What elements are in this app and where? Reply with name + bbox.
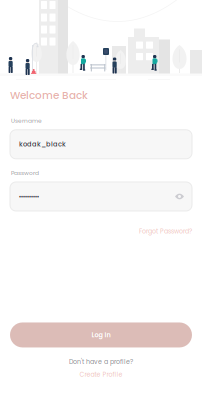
button[interactable]: Forgot Password?: [139, 227, 192, 236]
staticText: ••••••••••: [19, 193, 39, 200]
staticText: Log in: [91, 330, 110, 339]
button[interactable]: Log in: [10, 322, 192, 347]
staticText: Password: [11, 169, 39, 177]
staticText: Create Profile: [79, 370, 122, 379]
staticText: Username: [11, 117, 42, 125]
staticText: Welcome Back: [10, 88, 88, 103]
staticText: Don't have a profile?: [69, 357, 133, 366]
button[interactable]: Show password: [175, 192, 192, 201]
staticText: kodak_black: [19, 140, 66, 149]
button[interactable]: Create Profile: [79, 370, 122, 379]
staticText: Forgot Password?: [139, 227, 192, 236]
